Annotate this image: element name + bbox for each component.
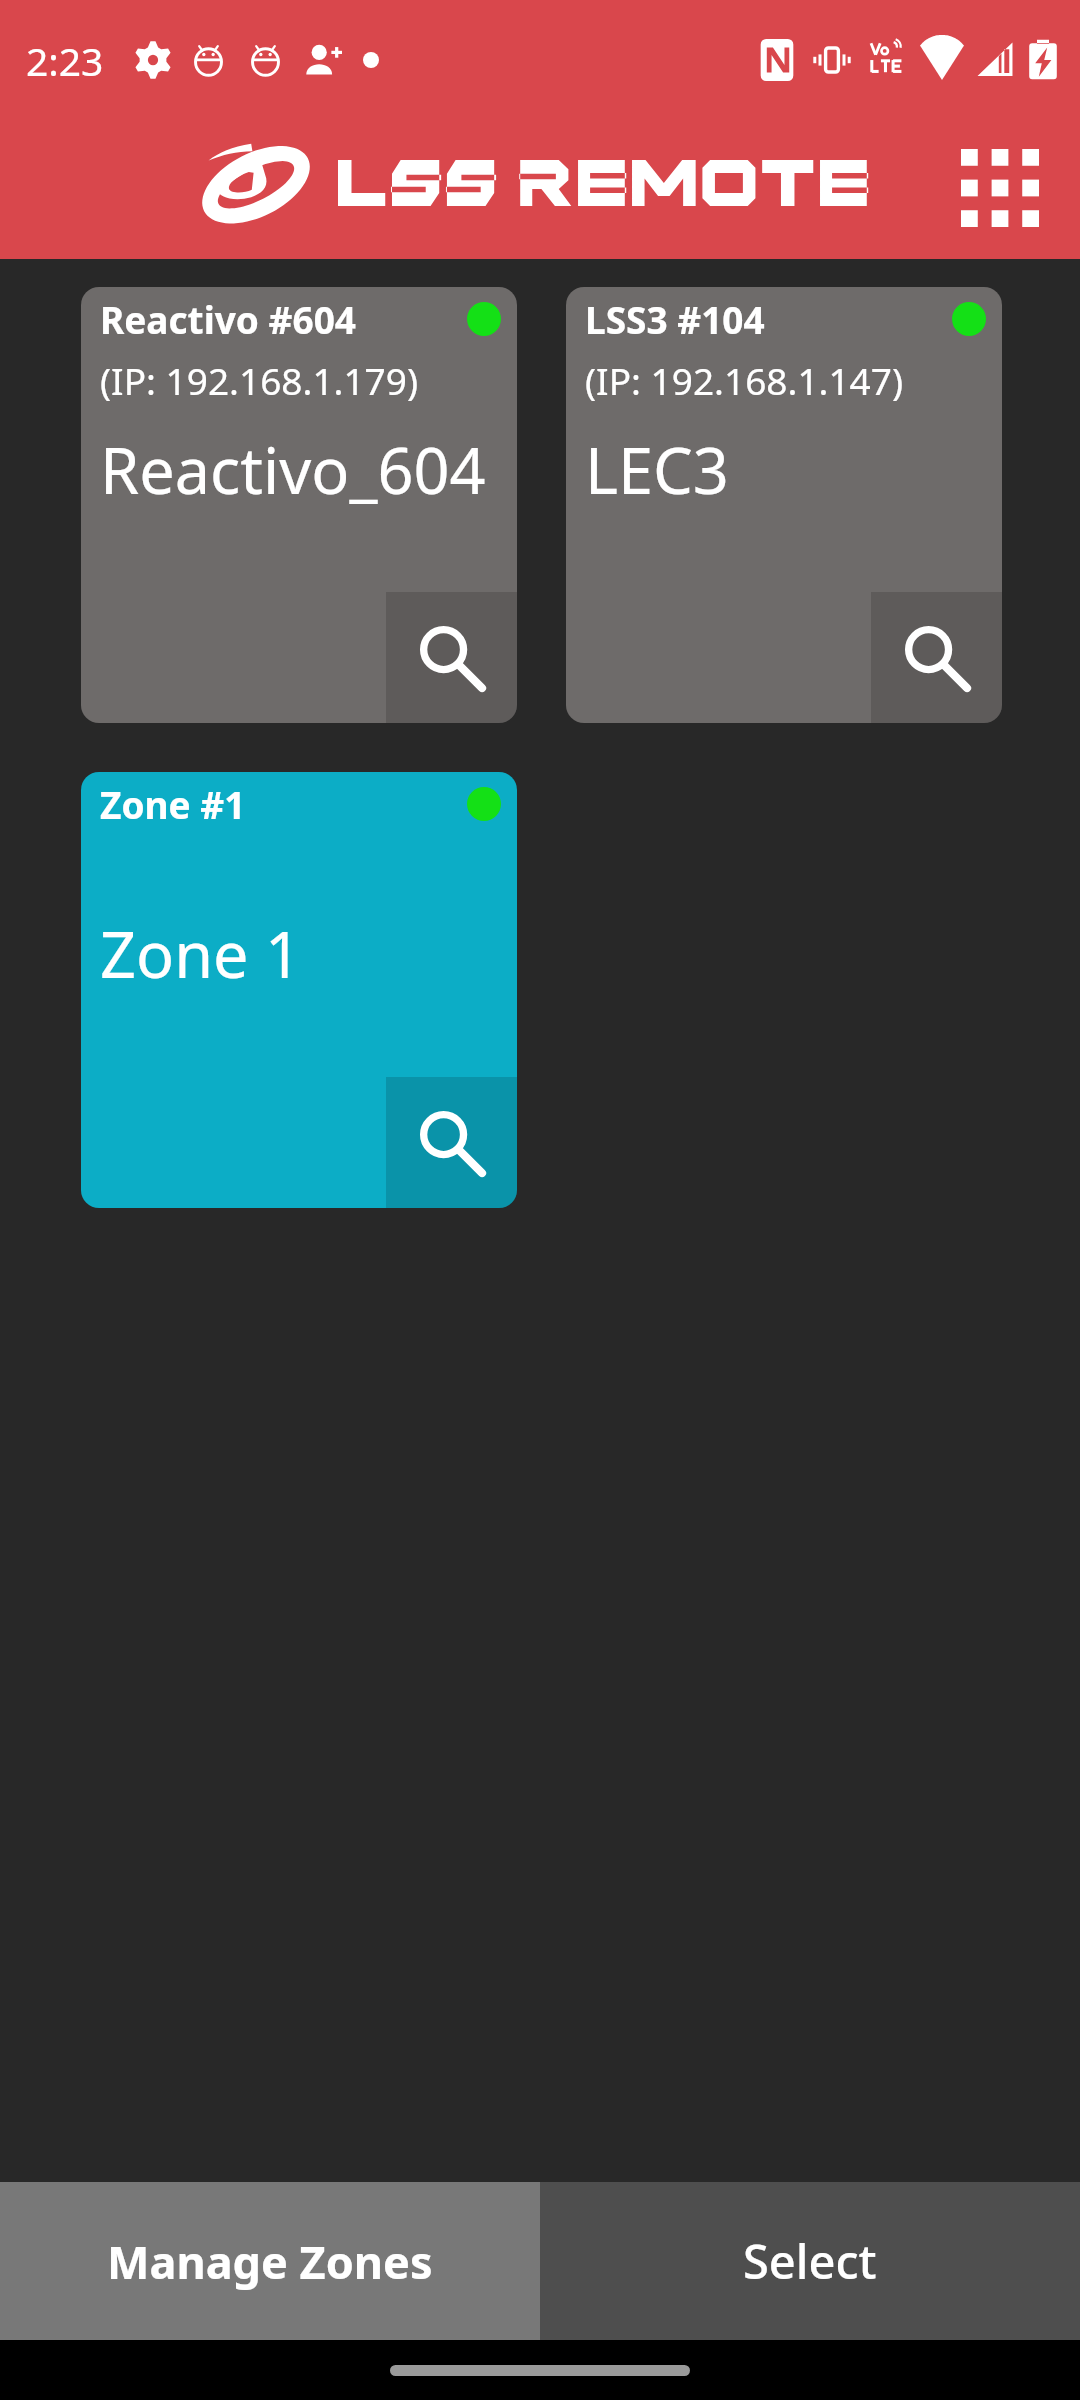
staticText: Reactivo #604: [100, 294, 357, 344]
button[interactable]: Zone #1: [81, 772, 517, 1208]
button[interactable]: Search: [386, 592, 517, 723]
button[interactable]: Manage Zones: [0, 2182, 540, 2340]
staticText: (IP: 192.168.1.179): [100, 355, 419, 405]
button[interactable]: Search: [386, 1077, 517, 1208]
staticText: 2:23: [26, 34, 104, 87]
staticText: LSS3 #104: [585, 294, 765, 344]
staticText: Manage Zones: [107, 2231, 433, 2292]
staticText: (IP: 192.168.1.147): [585, 355, 904, 405]
staticText: Select: [743, 2229, 877, 2293]
button[interactable]: Reactivo #604: [81, 287, 517, 723]
staticText: Reactivo_604: [100, 427, 486, 513]
button[interactable]: LSS3 #104: [566, 287, 1002, 723]
staticText: LEC3: [585, 427, 729, 513]
button[interactable]: Apps menu: [940, 128, 1060, 248]
staticText: Zone #1: [100, 779, 246, 829]
button[interactable]: Search: [871, 592, 1002, 723]
button[interactable]: Select: [540, 2182, 1080, 2340]
staticText: Zone 1: [100, 911, 302, 997]
